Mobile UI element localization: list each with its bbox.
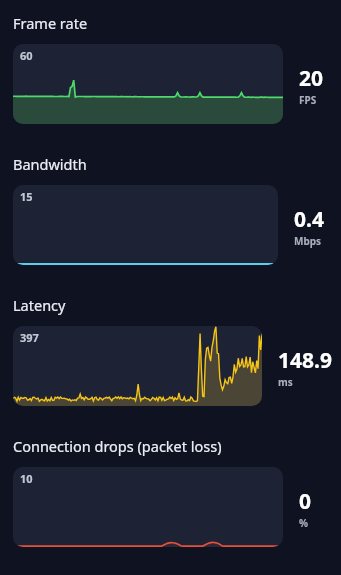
staticText: 0 [299, 487, 312, 516]
staticText: Connection drops (packet loss) [13, 436, 222, 456]
button[interactable]: 10 [13, 467, 283, 547]
button[interactable]: 60 [13, 44, 283, 124]
staticText: 15 [20, 189, 33, 204]
staticText: Latency [13, 295, 66, 315]
staticText: 397 [20, 330, 39, 345]
staticText: % [299, 516, 309, 530]
staticText: 10 [20, 471, 33, 486]
staticText: 148.9 [278, 346, 332, 375]
staticText: 20 [299, 64, 324, 93]
button[interactable]: 397 [13, 326, 262, 406]
staticText: Bandwidth [13, 154, 87, 174]
staticText: 60 [20, 48, 33, 63]
staticText: 0.4 [294, 205, 324, 234]
staticText: Mbps [294, 234, 322, 248]
button[interactable]: 15 [13, 185, 278, 265]
staticText: FPS [299, 93, 317, 107]
staticText: Frame rate [13, 13, 88, 33]
staticText: ms [278, 375, 293, 389]
